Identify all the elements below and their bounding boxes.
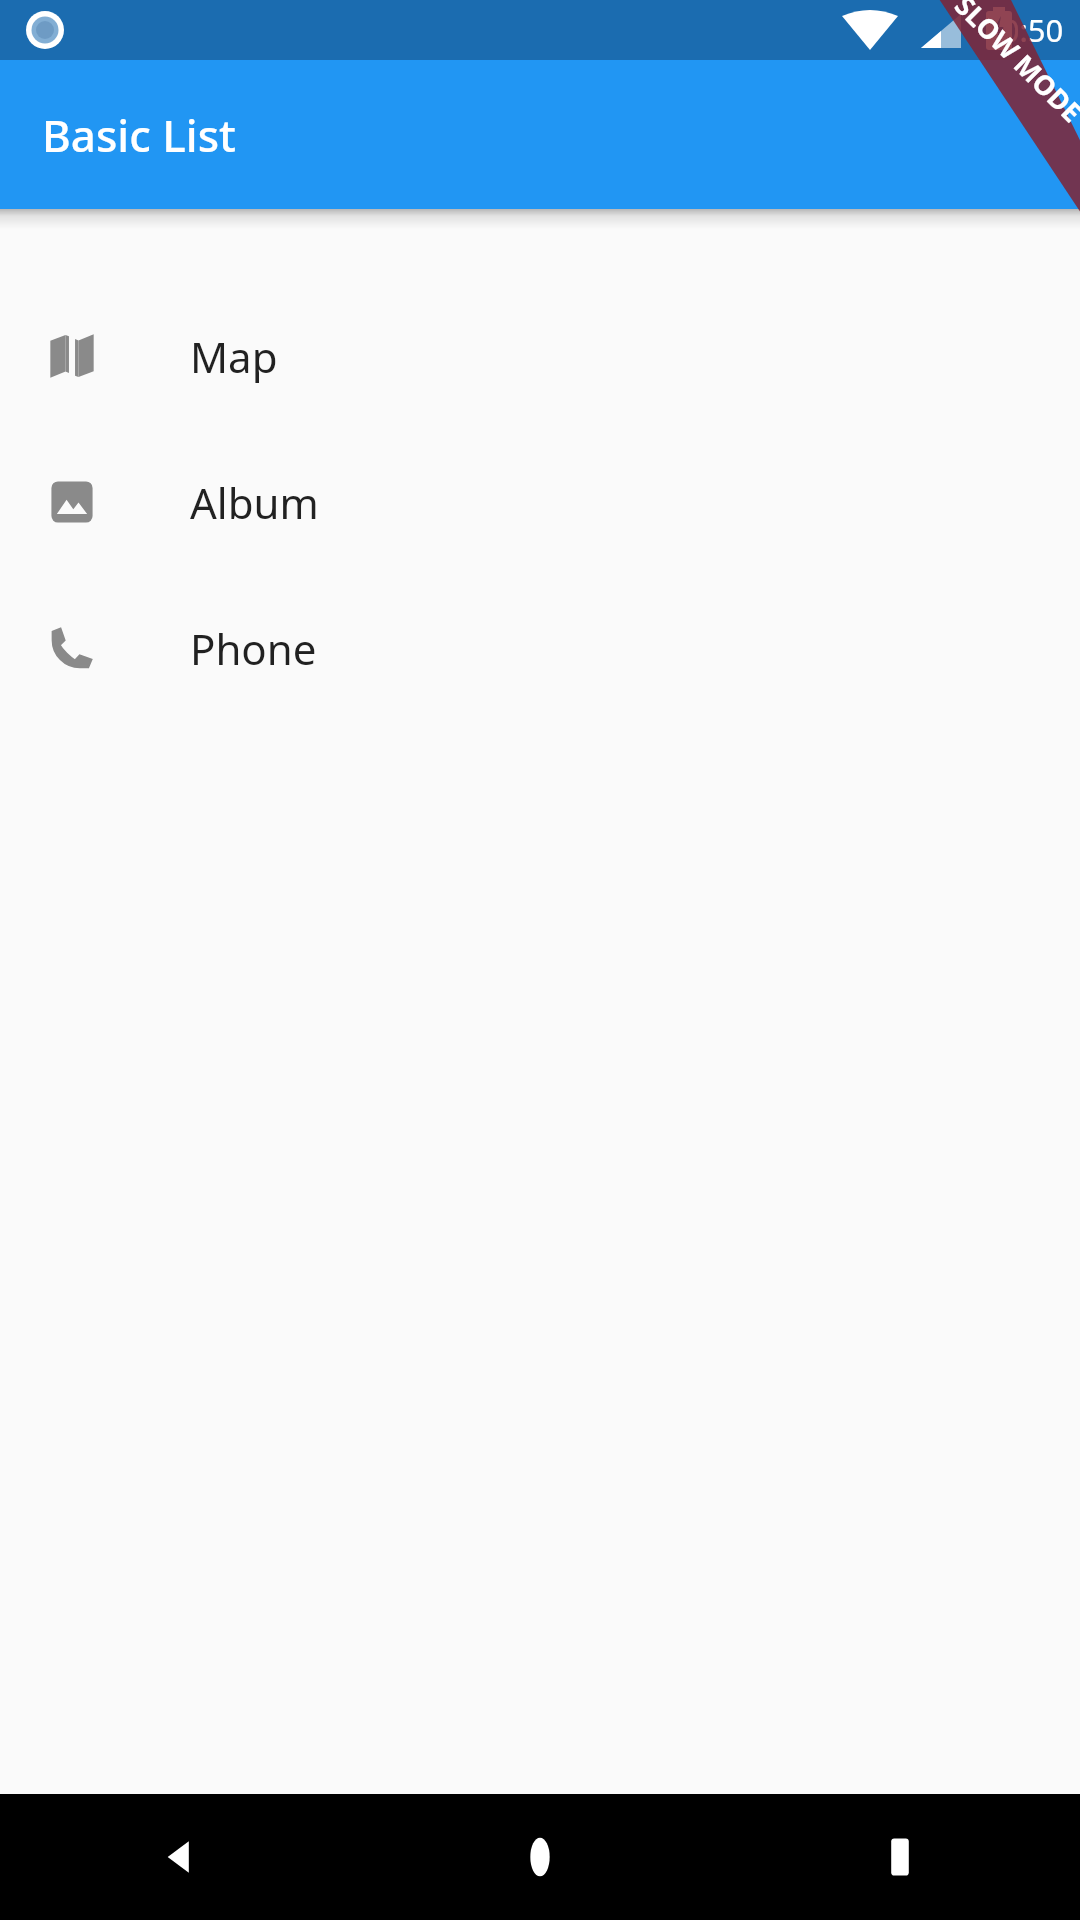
button[interactable]: Back xyxy=(0,1794,360,1920)
staticText: Phone xyxy=(190,620,317,677)
staticText: Basic List xyxy=(42,105,236,165)
button[interactable]: Map xyxy=(0,283,1080,429)
button[interactable]: Album xyxy=(0,429,1080,575)
button[interactable]: Recent apps xyxy=(720,1794,1080,1920)
staticText: Map xyxy=(190,328,278,385)
staticText: 10:50 xyxy=(984,9,1064,51)
staticText: Album xyxy=(190,474,319,531)
button[interactable]: Home xyxy=(360,1794,720,1920)
button[interactable]: Phone xyxy=(0,575,1080,721)
